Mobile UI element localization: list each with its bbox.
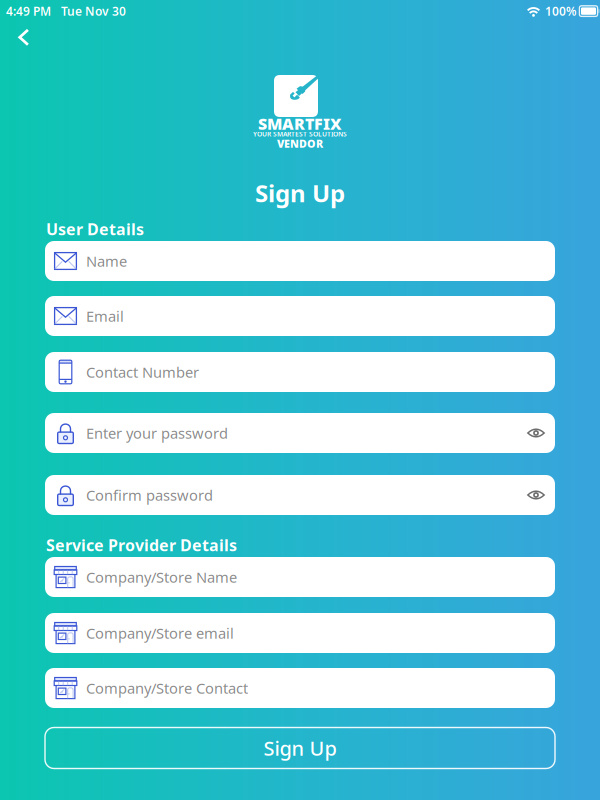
staticText: Tue Nov 30 xyxy=(61,3,126,19)
staticText: Company/Store Name xyxy=(86,567,237,587)
button[interactable]: Sign Up xyxy=(45,727,555,768)
staticText: YOUR SMARTEST SOLUTIONS xyxy=(253,130,347,138)
staticText: SMARTFIX xyxy=(258,113,342,134)
staticText: Sign Up xyxy=(255,177,345,209)
button[interactable]: Company/Store email xyxy=(45,613,555,653)
staticText: User Details xyxy=(46,218,144,240)
staticText: 4:49 PM xyxy=(6,3,51,19)
button[interactable]: Enter your password xyxy=(45,413,555,453)
button[interactable]: Company/Store Contact xyxy=(45,668,555,708)
button[interactable]: Name xyxy=(45,241,555,281)
staticText: Service Provider Details xyxy=(46,534,237,556)
staticText: Company/Store email xyxy=(86,623,234,643)
staticText: Sign Up xyxy=(263,735,336,761)
staticText: VENDOR xyxy=(277,136,323,151)
staticText: Name xyxy=(86,251,127,271)
staticText: Confirm password xyxy=(86,485,213,505)
staticText: 100% xyxy=(545,3,577,19)
button[interactable]: Back xyxy=(3,19,43,55)
button[interactable]: Email xyxy=(45,296,555,336)
button[interactable]: Contact Number xyxy=(45,352,555,392)
staticText: Contact Number xyxy=(86,362,199,382)
staticText: Email xyxy=(86,306,124,326)
staticText: Company/Store Contact xyxy=(86,678,248,698)
staticText: Enter your password xyxy=(86,423,228,443)
button[interactable]: Confirm password xyxy=(45,475,555,515)
button[interactable]: Company/Store Name xyxy=(45,557,555,597)
